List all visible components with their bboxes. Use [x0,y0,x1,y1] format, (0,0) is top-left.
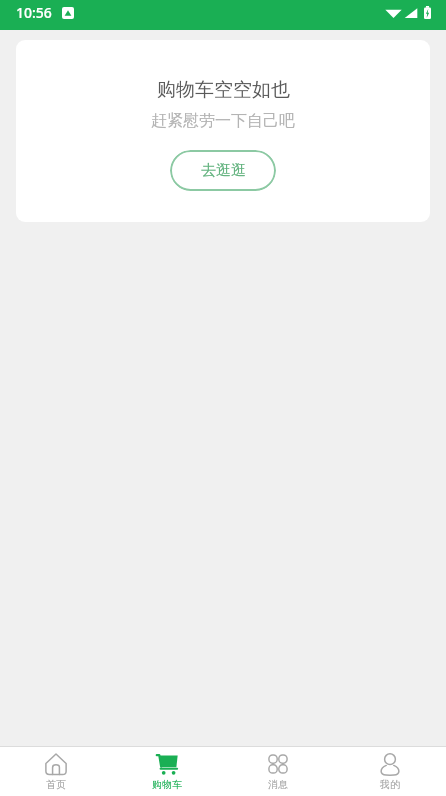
button[interactable]: 首页 Home [0,753,111,791]
staticText: 购物车空空如也 [157,78,290,102]
button[interactable]: 我的 Profile [334,753,446,791]
staticText: 去逛逛 [201,161,246,180]
button[interactable]: 购物车 Cart [111,753,222,791]
staticText: 首页 [46,778,66,791]
button[interactable]: 去逛逛 [170,150,276,191]
staticText: 消息 [268,778,288,791]
staticText: 赶紧慰劳一下自己吧 [151,111,295,131]
staticText: 我的 [380,778,400,791]
button[interactable]: 消息 Messages [222,753,334,791]
staticText: 10:56 [16,3,52,22]
staticText: 购物车 [152,778,182,791]
